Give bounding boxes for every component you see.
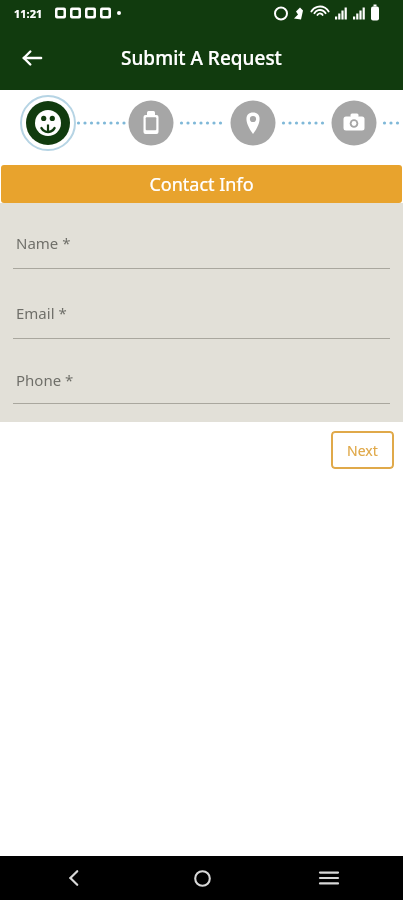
button[interactable]: Phone * — [0, 357, 403, 422]
button[interactable]: Contact Info — [1, 165, 402, 203]
button[interactable]: Home — [182, 858, 222, 898]
button[interactable]: Email * — [0, 287, 403, 357]
staticText: Phone * — [16, 370, 74, 390]
staticText: Submit A Request — [121, 45, 282, 71]
staticText: Name * — [16, 233, 71, 253]
button[interactable]: Name * — [0, 217, 403, 287]
button[interactable]: Next — [331, 431, 394, 469]
staticText: Contact Info — [149, 172, 254, 197]
staticText: Next — [347, 441, 378, 460]
button[interactable]: Back — [10, 36, 54, 80]
staticText: 11:21 — [14, 6, 43, 21]
staticText: Email * — [16, 303, 67, 323]
button[interactable]: Recent apps — [309, 858, 349, 898]
button[interactable]: Back — [54, 858, 94, 898]
